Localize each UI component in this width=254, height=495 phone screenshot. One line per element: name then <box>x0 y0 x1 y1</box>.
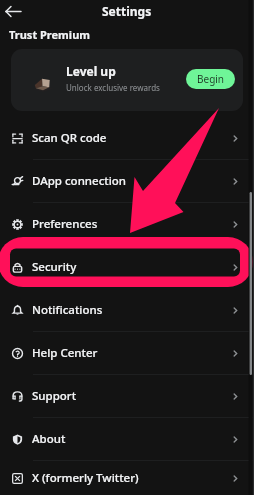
button[interactable]: Preferences <box>0 203 254 245</box>
button[interactable]: Support <box>0 375 254 417</box>
button[interactable]: DApp connection <box>0 160 254 202</box>
staticText: DApp connection <box>32 173 231 189</box>
button[interactable]: Level up <box>11 49 243 111</box>
staticText: About <box>32 431 231 447</box>
button[interactable]: Help Center <box>0 332 254 374</box>
button[interactable]: Security <box>0 246 254 288</box>
staticText: Support <box>32 388 231 404</box>
staticText: X (formerly Twitter) <box>32 470 231 486</box>
button[interactable]: About <box>0 418 254 460</box>
staticText: Scan QR code <box>32 130 231 146</box>
staticText: Settings <box>102 3 152 19</box>
staticText: Level up <box>66 63 116 79</box>
staticText: Unlock exclusive rewards <box>66 82 160 93</box>
staticText: Preferences <box>32 216 231 232</box>
button[interactable]: Notifications <box>0 289 254 331</box>
staticText: Help Center <box>32 345 231 361</box>
staticText: Notifications <box>32 302 231 318</box>
button[interactable]: X (formerly Twitter) <box>0 461 254 495</box>
staticText: Begin <box>197 72 225 86</box>
button[interactable]: Back <box>3 1 23 21</box>
button[interactable]: Scan QR code <box>0 117 254 159</box>
button[interactable]: Begin <box>186 69 235 89</box>
staticText: Security <box>32 259 231 275</box>
staticText: Trust Premium <box>9 27 91 42</box>
